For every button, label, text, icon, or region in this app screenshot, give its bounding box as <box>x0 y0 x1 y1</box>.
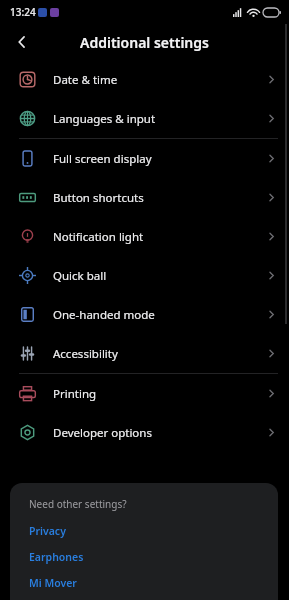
button[interactable]: Accessibility <box>0 334 289 373</box>
button[interactable]: Back <box>7 27 37 57</box>
staticText: Additional settings <box>80 33 209 52</box>
staticText: Earphones <box>29 550 84 564</box>
button[interactable]: Printing <box>0 374 289 413</box>
button[interactable]: Quick ball <box>0 256 289 295</box>
button[interactable]: Button shortcuts <box>0 178 289 217</box>
staticText: Languages & input <box>53 111 266 127</box>
button[interactable]: Notification light <box>0 217 289 256</box>
button[interactable]: Date & time <box>0 60 289 99</box>
staticText: Mi Mover <box>29 576 77 590</box>
staticText: Full screen display <box>53 151 266 167</box>
button[interactable]: One-handed mode <box>0 295 289 334</box>
staticText: Need other settings? <box>29 497 127 511</box>
button[interactable]: Mi Mover <box>29 576 264 590</box>
button[interactable]: Privacy <box>29 524 264 538</box>
button[interactable]: Developer options <box>0 413 289 452</box>
staticText: Printing <box>53 386 266 402</box>
staticText: Developer options <box>53 425 266 441</box>
staticText: 13:24 <box>10 5 36 19</box>
staticText: One-handed mode <box>53 307 266 323</box>
button[interactable]: Languages & input <box>0 99 289 138</box>
staticText: Notification light <box>53 229 266 245</box>
staticText: Accessibility <box>53 346 266 362</box>
staticText: Quick ball <box>53 268 266 284</box>
staticText: Button shortcuts <box>53 190 266 206</box>
button[interactable]: Full screen display <box>0 139 289 178</box>
staticText: Date & time <box>53 72 266 88</box>
staticText: Privacy <box>29 524 66 538</box>
button[interactable]: Earphones <box>29 550 264 564</box>
